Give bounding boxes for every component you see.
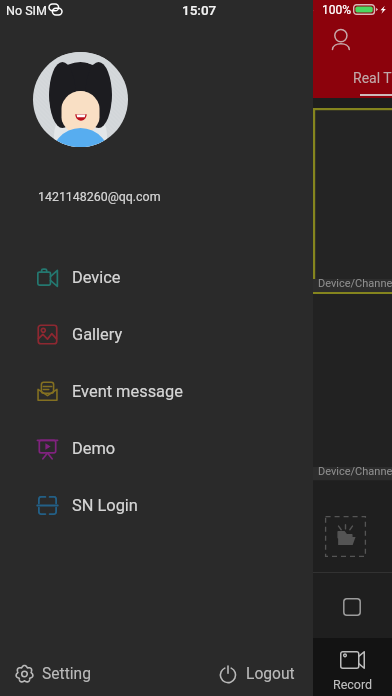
staticText: 15:07 — [182, 2, 217, 18]
button[interactable]: Open files — [325, 516, 366, 557]
staticText: Event message — [72, 382, 183, 401]
button[interactable]: Demo — [0, 420, 313, 477]
button[interactable]: Gallery — [0, 306, 313, 363]
button[interactable]: Record — [322, 651, 383, 692]
staticText: Record — [333, 677, 373, 692]
button[interactable]: Logout — [218, 664, 295, 684]
button[interactable]: Event message — [0, 363, 313, 420]
staticText: Device — [72, 268, 121, 287]
staticText: No SIM — [6, 3, 47, 18]
button[interactable]: Device — [0, 249, 313, 306]
button[interactable]: Profile photo — [33, 52, 128, 147]
button[interactable]: Device/Channel — [313, 294, 392, 481]
staticText: Device/Channel — [318, 465, 392, 478]
button[interactable]: Setting — [15, 664, 91, 684]
staticText: Gallery — [72, 325, 123, 344]
staticText: 100% — [322, 3, 352, 17]
staticText: Demo — [72, 439, 116, 458]
button[interactable]: Stop — [343, 598, 361, 616]
button[interactable]: Device/Channel — [313, 108, 392, 294]
staticText: Setting — [42, 665, 91, 683]
staticText: Logout — [246, 665, 295, 683]
staticText: SN Login — [72, 496, 138, 515]
staticText: Device/Channel — [318, 277, 392, 290]
button[interactable]: SN Login — [0, 477, 313, 534]
button[interactable]: Account — [331, 26, 352, 50]
button[interactable]: Real Time — [353, 70, 392, 86]
staticText: 1421148260@qq.com — [38, 189, 161, 204]
